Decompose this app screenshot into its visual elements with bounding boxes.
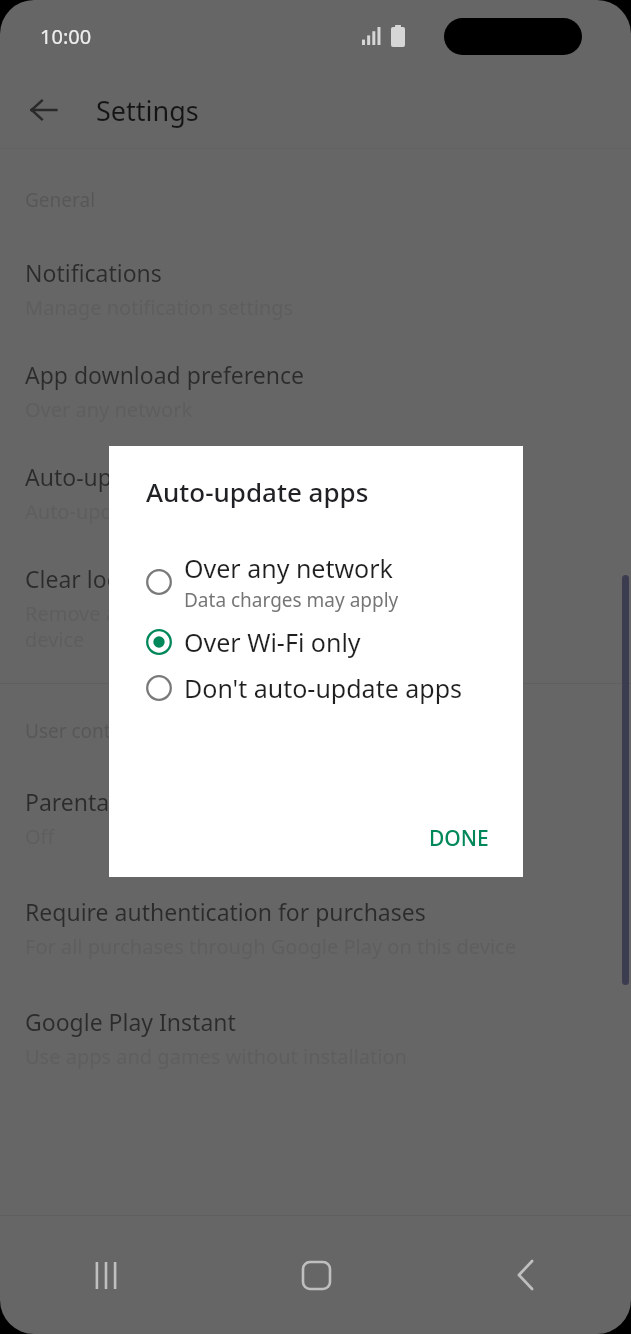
button[interactable]: Auto-update apps — [0, 461, 631, 525]
button[interactable]: DONE — [413, 814, 505, 863]
button[interactable]: Home — [211, 1216, 421, 1334]
button[interactable]: Parental controls — [0, 786, 631, 850]
staticText: DONE — [429, 824, 489, 853]
button[interactable]: Don't auto-update apps — [109, 665, 523, 711]
staticText: Over any network — [184, 551, 393, 585]
staticText: Auto-update apps over Wi-Fi only — [25, 498, 336, 525]
staticText: General — [25, 187, 96, 213]
button[interactable]: Over any network — [109, 545, 523, 619]
staticText: Data charges may apply — [184, 587, 399, 613]
staticText: User controls — [25, 718, 144, 744]
button[interactable]: Back — [22, 88, 66, 132]
staticText: Google Play Instant — [25, 1006, 236, 1037]
staticText: Auto-update apps — [25, 461, 219, 492]
staticText: Auto-update apps — [146, 474, 369, 509]
staticText: Don't auto-update apps — [184, 671, 463, 705]
staticText: Over Wi-Fi only — [184, 625, 361, 659]
staticText: Require authentication for purchases — [25, 896, 426, 927]
staticText: Clear local search history — [25, 563, 295, 594]
button[interactable]: App download preference — [0, 359, 631, 423]
button[interactable]: Google Play Instant — [0, 1006, 631, 1070]
staticText: Settings — [96, 92, 199, 129]
button[interactable]: Notifications — [0, 257, 631, 321]
staticText: Remove all the searches you have perform… — [25, 600, 518, 653]
staticText: Notifications — [25, 257, 162, 288]
button[interactable]: Clear local search history — [0, 563, 631, 653]
staticText: 10:00 — [40, 23, 92, 50]
button[interactable]: Require authentication for purchases — [0, 896, 631, 960]
staticText: Parental controls — [25, 786, 209, 817]
staticText: App download preference — [25, 359, 305, 390]
button[interactable]: Recent apps — [0, 1216, 211, 1334]
button[interactable]: Back — [421, 1216, 631, 1334]
button[interactable]: Over Wi-Fi only — [109, 619, 523, 665]
